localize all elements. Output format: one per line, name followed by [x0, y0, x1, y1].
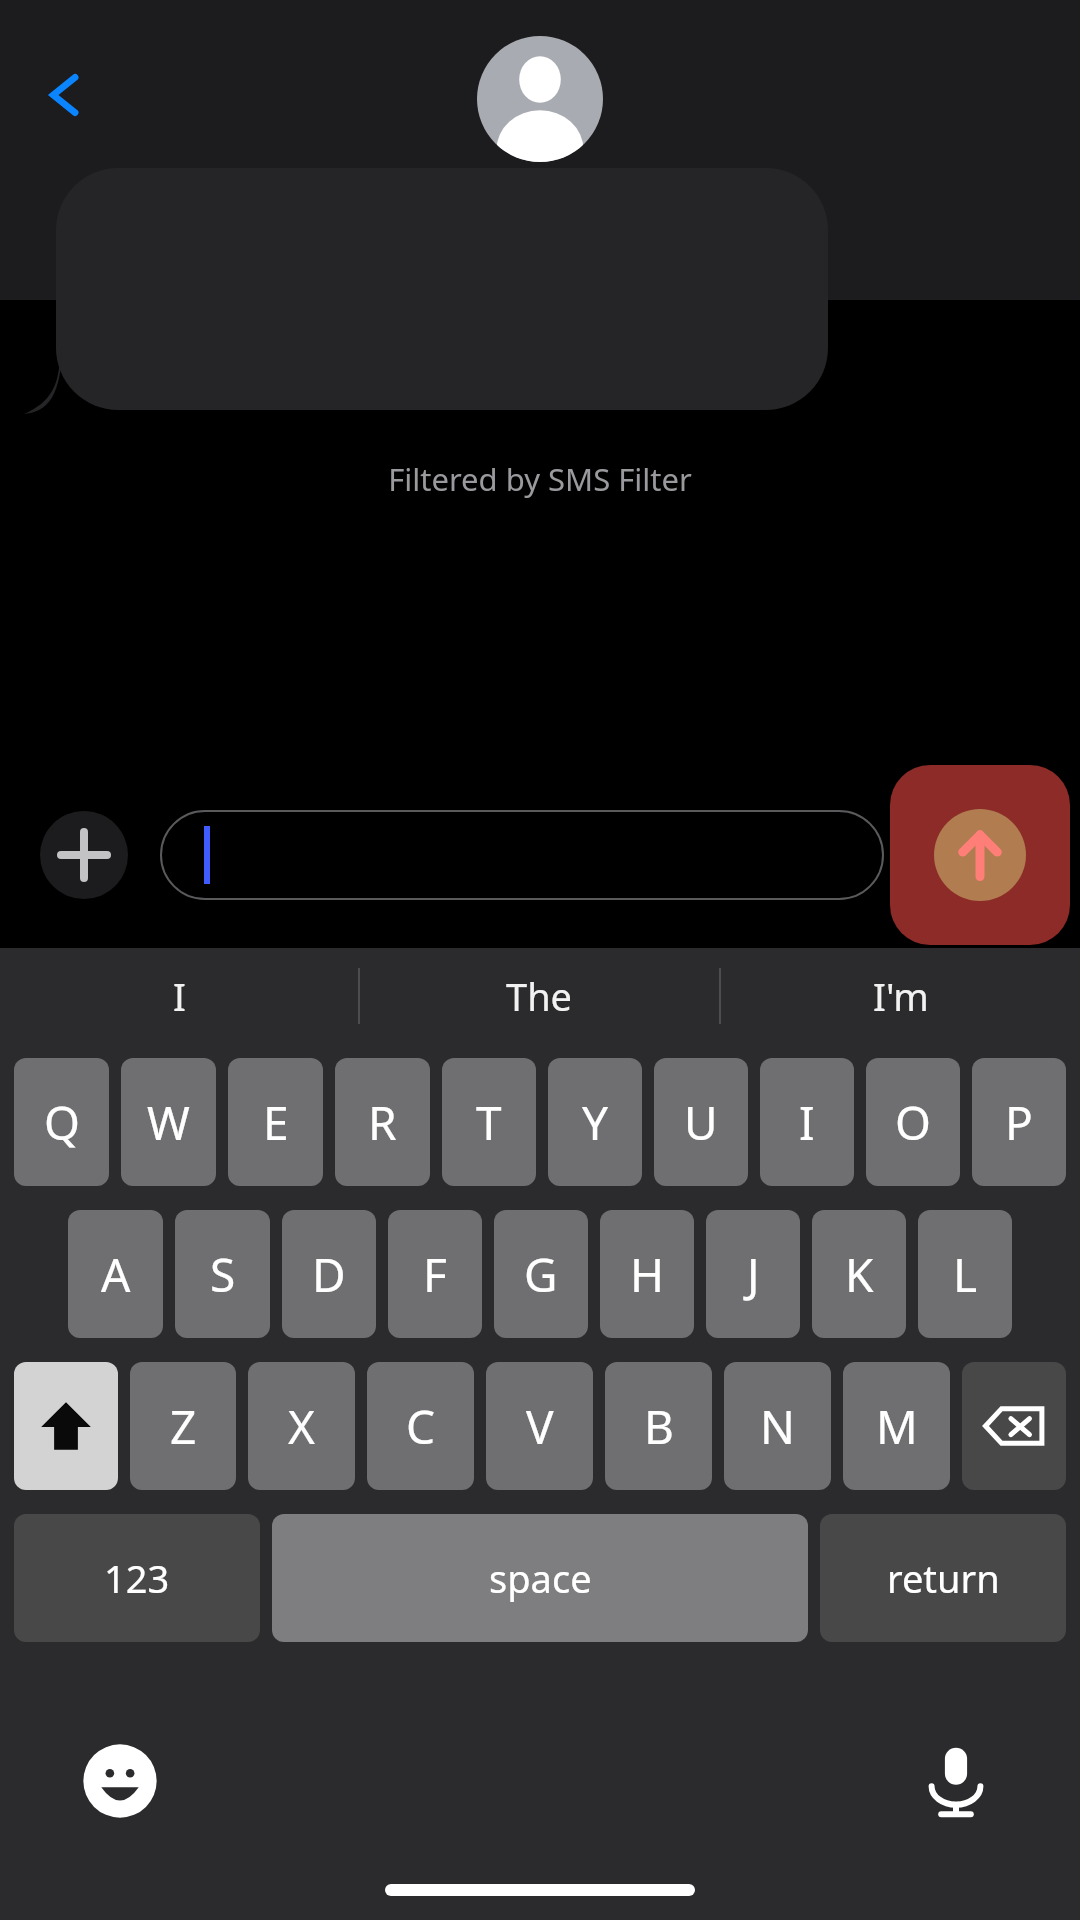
button[interactable]: Y — [548, 1058, 642, 1186]
staticText: M — [876, 1395, 918, 1458]
button[interactable]: V — [486, 1362, 593, 1490]
staticText: space — [489, 1552, 592, 1604]
staticText: Y — [582, 1091, 609, 1154]
button[interactable]: I — [0, 948, 358, 1044]
staticText: I — [173, 970, 186, 1022]
staticText: W — [147, 1091, 190, 1154]
button[interactable]: Dictate — [908, 1733, 1004, 1829]
button[interactable]: H — [600, 1210, 694, 1338]
staticText: U — [684, 1091, 718, 1154]
button[interactable]: The — [360, 948, 719, 1044]
staticText: return — [887, 1552, 1000, 1604]
staticText: Z — [170, 1395, 197, 1458]
button[interactable]: D — [282, 1210, 376, 1338]
staticText: X — [288, 1395, 315, 1458]
button[interactable]: Q — [14, 1058, 109, 1186]
staticText: K — [845, 1243, 874, 1306]
button[interactable]: R — [335, 1058, 430, 1186]
staticText: T — [476, 1091, 502, 1154]
button[interactable]: C — [367, 1362, 474, 1490]
staticText: A — [101, 1243, 131, 1306]
staticText: 123 — [104, 1552, 170, 1604]
staticText: S — [210, 1243, 236, 1306]
button[interactable]: A — [68, 1210, 163, 1338]
staticText: I'm — [873, 970, 929, 1022]
staticText: F — [423, 1243, 447, 1306]
button[interactable]: E — [228, 1058, 323, 1186]
button[interactable]: Emoji — [72, 1733, 168, 1829]
button[interactable]: P — [972, 1058, 1066, 1186]
staticText: N — [760, 1395, 795, 1458]
staticText: B — [644, 1395, 674, 1458]
button[interactable]: X — [248, 1362, 355, 1490]
button[interactable]: F — [388, 1210, 482, 1338]
button[interactable]: S — [175, 1210, 270, 1338]
button[interactable]: I — [760, 1058, 854, 1186]
button[interactable]: N — [724, 1362, 831, 1490]
button[interactable]: L — [918, 1210, 1012, 1338]
staticText: H — [630, 1243, 665, 1306]
staticText: C — [406, 1395, 436, 1458]
button[interactable]: B — [605, 1362, 712, 1490]
button[interactable]: K — [812, 1210, 906, 1338]
staticText: O — [895, 1091, 931, 1154]
staticText: G — [524, 1243, 558, 1306]
staticText: Filtered by SMS Filter — [388, 458, 692, 500]
button[interactable]: Send — [890, 765, 1070, 945]
button[interactable]: Z — [130, 1362, 236, 1490]
button[interactable]: Contact profile — [477, 36, 603, 162]
button[interactable]: O — [866, 1058, 960, 1186]
staticText: J — [747, 1243, 760, 1306]
button[interactable]: W — [121, 1058, 216, 1186]
staticText: I — [799, 1091, 815, 1154]
button[interactable]: J — [706, 1210, 800, 1338]
button[interactable]: M — [843, 1362, 950, 1490]
button[interactable] — [160, 810, 884, 900]
staticText: D — [312, 1243, 346, 1306]
staticText: Q — [44, 1091, 80, 1154]
button[interactable]: Add attachment — [40, 811, 128, 899]
staticText: L — [953, 1243, 978, 1306]
staticText: E — [263, 1091, 289, 1154]
staticText: R — [368, 1091, 397, 1154]
button[interactable]: U — [654, 1058, 748, 1186]
button[interactable]: G — [494, 1210, 588, 1338]
button[interactable]: 123 — [14, 1514, 260, 1642]
button[interactable]: return — [820, 1514, 1066, 1642]
staticText: V — [526, 1395, 554, 1458]
button[interactable]: Shift — [14, 1362, 118, 1490]
staticText: P — [1005, 1091, 1033, 1154]
button[interactable]: I'm — [721, 948, 1080, 1044]
button[interactable]: T — [442, 1058, 536, 1186]
button[interactable]: Back — [26, 56, 104, 134]
button[interactable]: Backspace — [962, 1362, 1066, 1490]
staticText: The — [506, 970, 573, 1022]
button[interactable]: space — [272, 1514, 808, 1642]
